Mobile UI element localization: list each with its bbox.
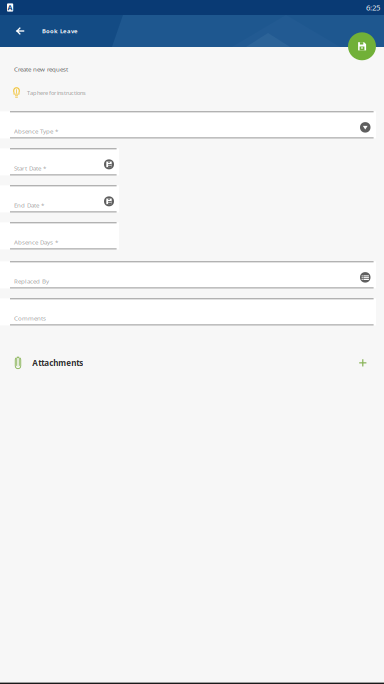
button[interactable]: Back [7, 20, 32, 42]
staticText: Absence Type * [14, 127, 58, 135]
button[interactable]: Absence Type * [0, 111, 376, 138]
staticText: Attachments [32, 357, 83, 368]
staticText: Comments [14, 314, 46, 322]
staticText: Start Date * [14, 164, 46, 172]
button[interactable]: Start Date * [0, 148, 119, 175]
staticText: Book Leave [42, 27, 78, 35]
button[interactable]: Comments [0, 298, 376, 325]
button[interactable]: Save [348, 32, 376, 60]
button[interactable]: Replaced By [0, 261, 376, 288]
staticText: Replaced By [14, 277, 49, 285]
staticText: Create new request [14, 65, 68, 73]
button[interactable]: Absence Days * [0, 222, 119, 249]
button[interactable]: End Date * [0, 185, 119, 212]
staticText: 6:25 [366, 2, 380, 13]
staticText: End Date * [14, 201, 44, 209]
staticText: A [8, 3, 13, 12]
button[interactable]: Tap here for instructions [0, 86, 384, 99]
staticText: Absence Days * [14, 238, 58, 246]
staticText: Tap here for instructions [27, 89, 86, 97]
button[interactable]: Attachments [0, 350, 384, 375]
